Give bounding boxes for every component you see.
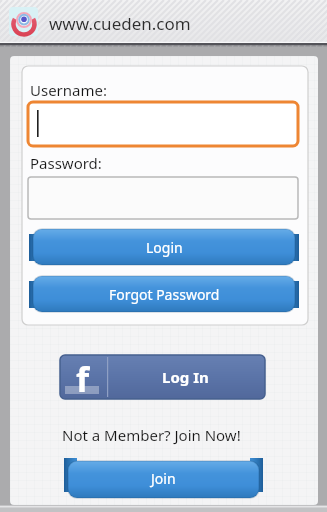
button[interactable] (28, 177, 298, 219)
staticText: Login (146, 238, 183, 257)
staticText: f (76, 356, 90, 400)
button[interactable] (28, 102, 298, 146)
staticText: Join (151, 469, 176, 488)
staticText: Password: (30, 153, 102, 173)
button[interactable]: Login (29, 229, 299, 265)
staticText: Forgot Password (109, 285, 220, 304)
button[interactable] (9, 7, 38, 36)
staticText: Not a Member? Join Now! (62, 425, 241, 445)
button[interactable]: Forgot Password (29, 276, 299, 312)
staticText: www.cueden.com (49, 12, 191, 35)
button[interactable]: Join (64, 458, 263, 498)
staticText: Username: (30, 80, 107, 100)
button[interactable]: f (60, 355, 265, 399)
staticText: Log In (162, 367, 209, 387)
